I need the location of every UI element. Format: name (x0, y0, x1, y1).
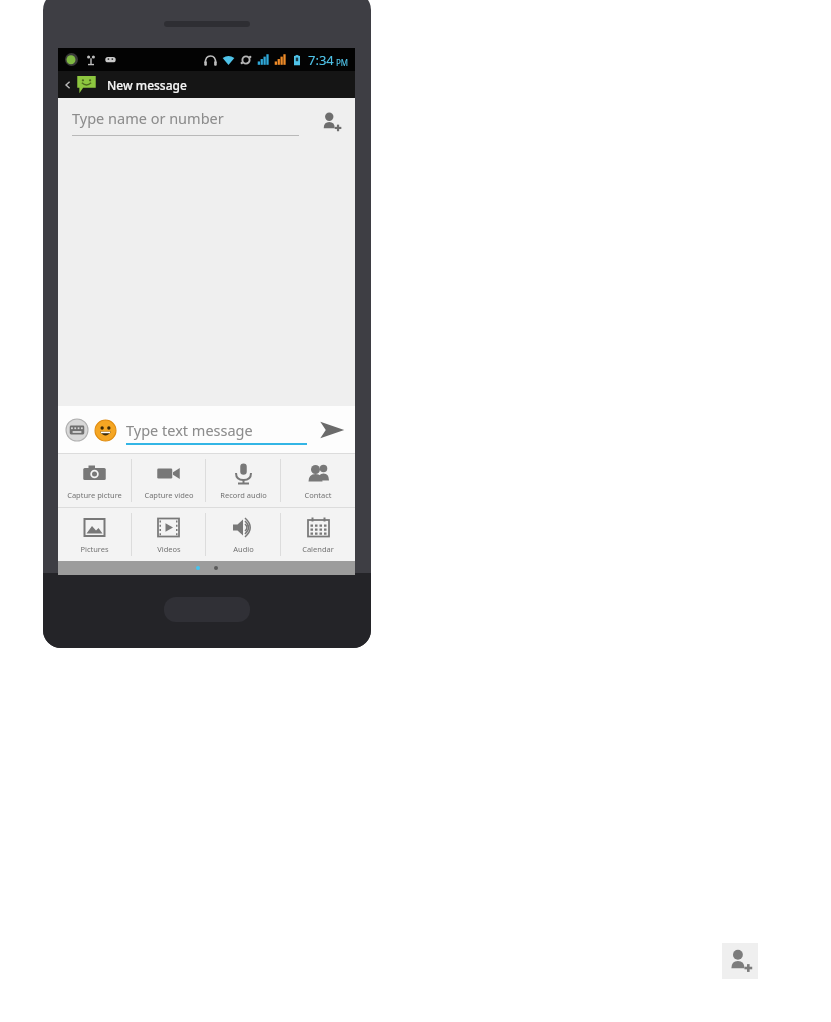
staticText: Record audio (220, 490, 267, 500)
button[interactable]: Keyboard (64, 417, 90, 443)
button[interactable]: Send (313, 411, 351, 449)
button[interactable]: Add recipient (311, 102, 351, 142)
button[interactable]: Calendar (281, 508, 355, 561)
button[interactable]: Type name or number (72, 108, 299, 136)
staticText: New message (107, 77, 187, 93)
button[interactable]: Audio (206, 508, 280, 561)
staticText: PM (336, 57, 349, 68)
button[interactable]: Pictures (58, 508, 131, 561)
button[interactable]: Capture video (132, 454, 205, 507)
button[interactable]: Contact (281, 454, 355, 507)
staticText: 7:34 (308, 51, 334, 69)
staticText: Type name or number (72, 108, 224, 128)
button[interactable]: Type text message (126, 406, 307, 453)
button[interactable]: Add contact (722, 943, 758, 979)
button[interactable]: Emoji (92, 417, 118, 443)
staticText: Capture picture (67, 490, 122, 500)
button[interactable]: Record audio (206, 454, 280, 507)
button[interactable]: Videos (132, 508, 205, 561)
staticText: Capture video (144, 490, 194, 500)
button[interactable]: Capture picture (58, 454, 131, 507)
button[interactable]: New message (58, 71, 355, 98)
staticText: Contact (304, 490, 332, 500)
staticText: Videos (157, 544, 181, 554)
staticText: Calendar (302, 544, 334, 554)
staticText: Pictures (80, 544, 109, 554)
staticText: Audio (233, 544, 254, 554)
staticText: Type text message (126, 420, 307, 440)
